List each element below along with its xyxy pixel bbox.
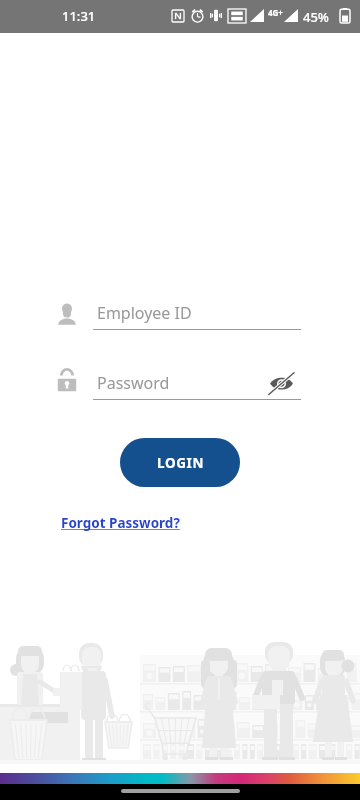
- staticText: 4G+: [268, 7, 283, 18]
- staticText: 11:31: [62, 7, 96, 25]
- button[interactable]: Forgot Password?: [61, 514, 180, 532]
- button[interactable]: LOGIN: [120, 438, 240, 487]
- staticText: 45%: [303, 8, 329, 26]
- staticText: Forgot Password?: [61, 514, 180, 532]
- staticText: Employee ID: [97, 302, 192, 324]
- staticText: LOGIN: [157, 454, 204, 472]
- button[interactable]: Show password: [268, 372, 294, 395]
- staticText: Password: [97, 372, 170, 394]
